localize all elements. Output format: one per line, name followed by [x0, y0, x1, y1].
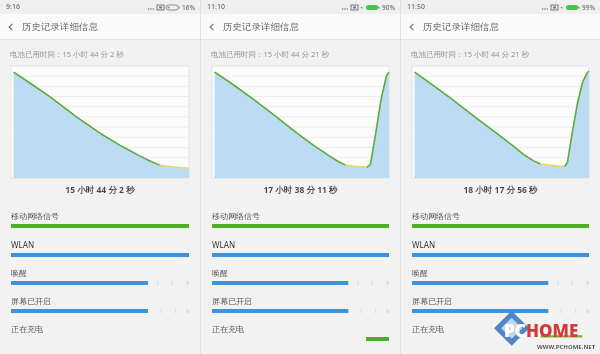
staticText: 16% [182, 3, 195, 12]
button[interactable]: 唤醒 [201, 268, 400, 296]
staticText: 电池已用时间：15 小时 44 分 2 秒 [10, 49, 124, 59]
staticText: WLAN [212, 239, 236, 250]
staticText: 移动网络信号 [412, 211, 460, 221]
staticText: 唤醒 [11, 268, 27, 278]
button[interactable]: Back [401, 16, 423, 38]
staticText: 屏幕已开启 [11, 296, 51, 306]
staticText: 历史记录详细信息 [423, 21, 499, 33]
button[interactable]: 移动网络信号 [201, 211, 400, 239]
staticText: 11:50 [407, 2, 425, 12]
button[interactable]: 屏幕已开启 [201, 296, 400, 324]
button[interactable]: 唤醒 [0, 268, 200, 296]
button[interactable]: 屏幕已开启 [0, 296, 200, 324]
staticText: 屏幕已开启 [412, 296, 452, 306]
staticText: 正在充电 [212, 324, 244, 334]
staticText: 唤醒 [212, 268, 228, 278]
staticText: 电池已用时间：15 小时 44 分 21 秒 [411, 49, 529, 59]
staticText: 移动网络信号 [212, 211, 260, 221]
button[interactable]: WLAN [201, 239, 400, 268]
staticText: 屏幕已开启 [212, 296, 252, 306]
button[interactable]: 移动网络信号 [0, 211, 200, 239]
button[interactable]: 唤醒 [401, 268, 600, 296]
staticText: 11:10 [207, 2, 225, 12]
staticText: 9:16 [6, 2, 20, 12]
staticText: 移动网络信号 [11, 211, 59, 221]
staticText: 电池已用时间：15 小时 44 分 21 秒 [211, 49, 329, 59]
staticText: + [360, 4, 364, 12]
button[interactable]: WLAN [401, 239, 600, 268]
staticText: 15 小时 44 分 2 秒 [0, 184, 200, 196]
staticText: WLAN [11, 239, 35, 250]
staticText: 正在充电 [412, 324, 444, 334]
staticText: WLAN [412, 239, 436, 250]
staticText: 唤醒 [412, 268, 428, 278]
staticText: 正在充电 [11, 324, 43, 334]
button[interactable]: Back [201, 16, 223, 38]
staticText: PC [504, 319, 526, 342]
staticText: WWW.PCHOME.NET [537, 343, 596, 351]
button[interactable]: 正在充电 [0, 324, 200, 352]
staticText: 历史记录详细信息 [223, 21, 299, 33]
staticText: + [560, 4, 564, 12]
button[interactable]: 移动网络信号 [401, 211, 600, 239]
button[interactable]: WLAN [0, 239, 200, 268]
staticText: 99% [582, 3, 595, 12]
button[interactable]: 屏幕已开启 [401, 296, 600, 324]
staticText: 17 小时 38 分 11 秒 [201, 184, 400, 196]
staticText: 18 小时 17 分 56 秒 [401, 184, 600, 196]
staticText: HOME [526, 319, 579, 342]
button[interactable]: Back [0, 16, 22, 38]
staticText: 90% [382, 3, 395, 12]
button[interactable]: 正在充电 [401, 324, 600, 352]
button[interactable]: 正在充电 [201, 324, 400, 352]
staticText: 历史记录详细信息 [22, 21, 98, 33]
